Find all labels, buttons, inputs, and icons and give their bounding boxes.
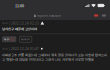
button[interactable]: 비추천 — [19, 36, 32, 42]
staticText: 11:00 — [15, 3, 24, 8]
button[interactable]: Reload — [94, 14, 98, 17]
staticText: ㅇㅇ | 2022.12.24 02:23 — [2, 21, 39, 25]
staticText: 아빠랑 2주 전쯤 싸웠는데 그때부터 계속 말을 안하다가 오늘 아침에 밥먹… — [2, 53, 107, 62]
staticText: m.pann.nate.com — [37, 14, 60, 17]
button[interactable]: m.pann.nate.com — [34, 14, 60, 17]
staticText: 12 — [10, 37, 14, 41]
button[interactable]: 추천 — [2, 36, 16, 42]
staticText: 추천 — [4, 37, 10, 41]
staticText: ㅇㅇ | 2022.12.24 01:47 — [2, 46, 39, 51]
button[interactable]: Tabs — [102, 14, 106, 17]
staticText: 남자친구 때문에 고민이야 — [2, 26, 37, 31]
staticText: 비추천 — [21, 37, 30, 41]
